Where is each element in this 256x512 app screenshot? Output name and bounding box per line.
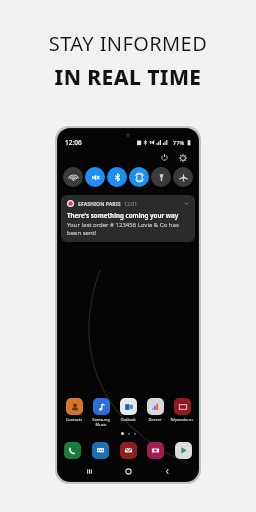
staticText: Your last order # 123456 Lovie & Co has … <box>67 221 189 237</box>
staticText: STAY INFORMED <box>0 30 256 57</box>
button[interactable]: Répondeur+ <box>170 398 194 422</box>
button[interactable]: Recents <box>81 464 97 478</box>
staticText: IN REAL TIME <box>0 63 256 92</box>
staticText: Répondeur+ <box>170 417 194 422</box>
staticText: 12:06 <box>65 138 82 147</box>
button[interactable]: Outlook <box>116 398 140 422</box>
button[interactable]: Home <box>120 464 136 478</box>
staticText: Outlook <box>116 417 140 422</box>
button[interactable]: Contacts <box>62 398 86 422</box>
button[interactable]: Play Store <box>175 442 192 459</box>
button[interactable]: Settings <box>177 152 188 163</box>
staticText: Contacts <box>62 417 86 422</box>
button[interactable]: Messages <box>92 442 109 459</box>
button[interactable]: Phone <box>64 442 81 459</box>
staticText: Deezer <box>143 417 167 422</box>
button[interactable]: Back <box>159 464 175 478</box>
button[interactable]: Airplane mode <box>173 167 193 187</box>
button[interactable]: Deezer <box>143 398 167 422</box>
button[interactable]: Bluetooth <box>107 167 127 187</box>
staticText: 77% <box>173 139 185 147</box>
button[interactable]: Wi-Fi <box>63 167 83 187</box>
button[interactable]: Power <box>159 152 170 163</box>
button[interactable]: Auto rotate <box>129 167 149 187</box>
button[interactable]: Camera <box>147 442 164 459</box>
button[interactable]: Flashlight <box>151 167 171 187</box>
button[interactable]: Samsung Music <box>89 398 113 427</box>
button[interactable]: Mute <box>85 167 105 187</box>
staticText: 12:01 <box>124 200 138 207</box>
staticText: Samsung Music <box>89 417 113 427</box>
button[interactable]: EFASHION PARIS <box>61 195 195 242</box>
staticText: EFASHION PARIS <box>78 200 121 207</box>
staticText: There's something coming your way <box>67 211 179 219</box>
button[interactable]: Gmail <box>120 442 137 459</box>
